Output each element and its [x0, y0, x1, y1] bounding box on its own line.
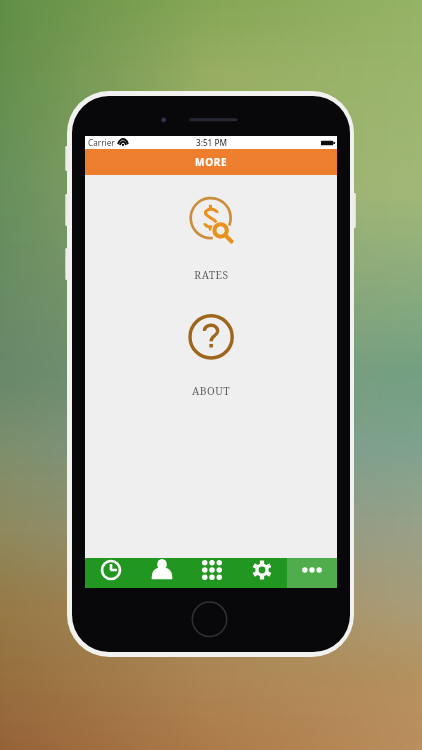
- button[interactable]: Recent: [85, 558, 136, 588]
- button[interactable]: Apps: [187, 558, 237, 588]
- staticText: RATES: [194, 268, 229, 282]
- button[interactable]: ABOUT: [85, 380, 337, 402]
- button[interactable]: About: [188, 314, 234, 360]
- button[interactable]: Settings: [237, 558, 287, 588]
- button[interactable]: Rates: [188, 195, 234, 241]
- button[interactable]: More: [287, 558, 337, 588]
- staticText: 3:51 PM: [196, 137, 227, 148]
- staticText: ABOUT: [192, 384, 230, 398]
- staticText: Carrier: [88, 137, 115, 148]
- button[interactable]: MORE: [85, 149, 337, 175]
- button[interactable]: Profile: [136, 558, 187, 588]
- staticText: MORE: [195, 155, 228, 169]
- button[interactable]: RATES: [85, 264, 337, 286]
